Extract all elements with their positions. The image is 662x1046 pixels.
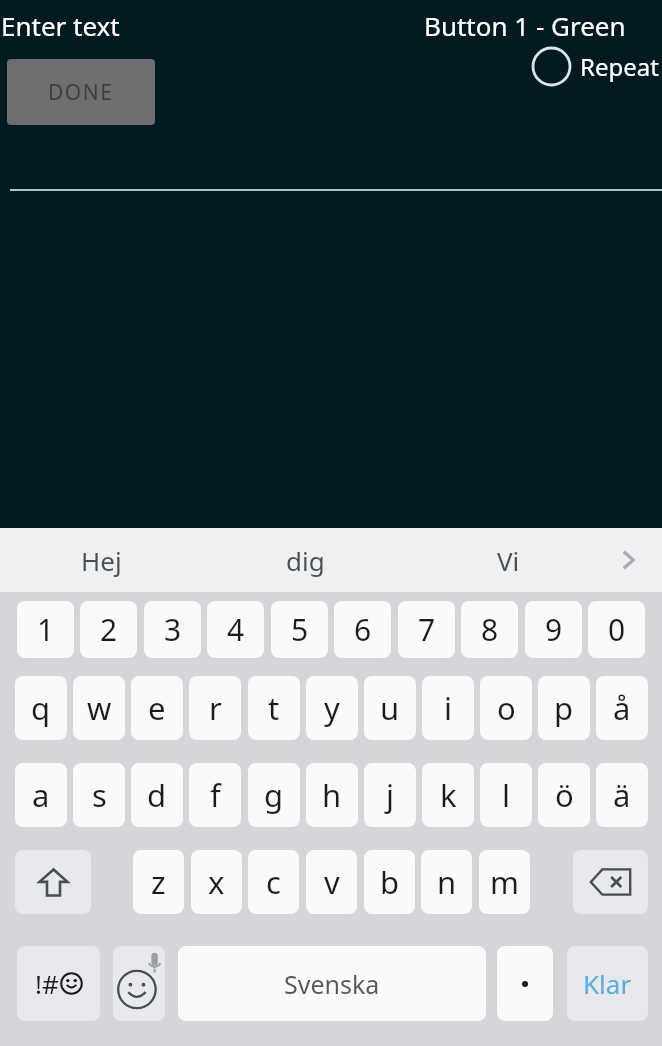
staticText: 0: [608, 609, 626, 650]
staticText: s: [92, 774, 107, 816]
button[interactable]: t: [248, 676, 300, 740]
button[interactable]: Shift: [15, 850, 91, 914]
button[interactable]: r: [189, 676, 241, 740]
staticText: f: [210, 774, 221, 816]
button[interactable]: More suggestions: [606, 528, 650, 592]
button[interactable]: Svenska: [178, 946, 486, 1021]
staticText: t: [268, 687, 280, 729]
staticText: i: [444, 687, 452, 729]
button[interactable]: f: [189, 763, 241, 827]
button[interactable]: g: [248, 763, 300, 827]
button[interactable]: [497, 946, 553, 1021]
staticText: z: [151, 861, 166, 903]
staticText: h: [322, 774, 342, 816]
button[interactable]: Vi: [450, 528, 566, 592]
staticText: c: [266, 861, 281, 903]
button[interactable]: Backspace: [573, 850, 648, 914]
staticText: Vi: [497, 543, 520, 578]
button[interactable]: 2: [80, 601, 137, 658]
staticText: 7: [418, 609, 436, 650]
staticText: 2: [100, 609, 118, 650]
button[interactable]: h: [306, 763, 358, 827]
button[interactable]: k: [422, 763, 474, 827]
staticText: Klar: [583, 966, 632, 1001]
button[interactable]: p: [538, 676, 590, 740]
staticText: Button 1 - Green: [424, 8, 626, 43]
staticText: 8: [481, 609, 499, 650]
staticText: d: [147, 774, 167, 816]
button[interactable]: l: [480, 763, 532, 827]
button[interactable]: Klar: [567, 946, 648, 1021]
button[interactable]: x: [191, 850, 242, 914]
staticText: 6: [354, 609, 372, 650]
staticText: ö: [555, 774, 574, 816]
button[interactable]: o: [480, 676, 532, 740]
button[interactable]: j: [364, 763, 416, 827]
button[interactable]: e: [131, 676, 183, 740]
button[interactable]: 0: [588, 601, 645, 658]
staticText: dig: [286, 543, 325, 578]
button[interactable]: u: [364, 676, 416, 740]
button[interactable]: i: [422, 676, 474, 740]
button[interactable]: ö: [538, 763, 590, 827]
staticText: !#: [35, 966, 59, 1001]
staticText: å: [613, 687, 631, 729]
button[interactable]: a: [15, 763, 67, 827]
button[interactable]: Symbols: [17, 946, 100, 1021]
staticText: v: [324, 861, 340, 903]
staticText: o: [497, 687, 516, 729]
staticText: Enter text: [1, 8, 120, 43]
button[interactable]: q: [15, 676, 67, 740]
button[interactable]: ä: [596, 763, 648, 827]
staticText: k: [440, 774, 457, 816]
button[interactable]: z: [133, 850, 184, 914]
staticText: n: [437, 861, 457, 903]
staticText: j: [386, 774, 394, 816]
staticText: a: [32, 774, 50, 816]
staticText: 3: [164, 609, 182, 650]
button[interactable]: Repeat: [530, 45, 659, 88]
staticText: g: [264, 774, 284, 816]
staticText: b: [380, 861, 400, 903]
staticText: Svenska: [284, 967, 380, 1001]
button[interactable]: s: [73, 763, 125, 827]
button[interactable]: 9: [525, 601, 582, 658]
staticText: ä: [613, 774, 631, 816]
staticText: y: [324, 687, 340, 729]
button[interactable]: 4: [207, 601, 264, 658]
staticText: m: [490, 861, 519, 903]
staticText: DONE: [48, 78, 114, 107]
staticText: 5: [291, 609, 309, 650]
staticText: q: [31, 687, 51, 729]
staticText: 9: [545, 609, 563, 650]
button[interactable]: 5: [271, 601, 328, 658]
button[interactable]: 8: [461, 601, 518, 658]
button[interactable]: DONE: [7, 59, 155, 125]
button[interactable]: y: [306, 676, 358, 740]
button[interactable]: n: [421, 850, 472, 914]
button[interactable]: å: [596, 676, 648, 740]
button[interactable]: 3: [144, 601, 201, 658]
staticText: r: [209, 687, 222, 729]
button[interactable]: Emoji and voice input: [113, 946, 165, 1021]
staticText: x: [208, 861, 225, 903]
staticText: l: [502, 774, 510, 816]
button[interactable]: dig: [247, 528, 363, 592]
staticText: p: [554, 687, 574, 729]
button[interactable]: m: [479, 850, 530, 914]
staticText: u: [380, 687, 400, 729]
button[interactable]: 6: [334, 601, 391, 658]
staticText: w: [87, 687, 112, 729]
staticText: 4: [227, 609, 245, 650]
button[interactable]: c: [248, 850, 299, 914]
button[interactable]: b: [364, 850, 415, 914]
button[interactable]: v: [306, 850, 357, 914]
staticText: Repeat: [580, 50, 659, 83]
button[interactable]: Hej: [43, 528, 159, 592]
button[interactable]: d: [131, 763, 183, 827]
staticText: 1: [37, 609, 55, 650]
staticText: Hej: [81, 543, 122, 578]
button[interactable]: 7: [398, 601, 455, 658]
button[interactable]: w: [73, 676, 125, 740]
button[interactable]: 1: [17, 601, 74, 658]
